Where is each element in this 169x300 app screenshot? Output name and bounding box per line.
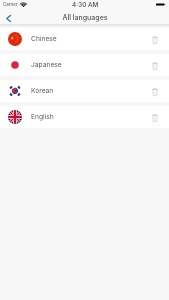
- staticText: Chinese: [31, 35, 57, 43]
- staticText: Japanese: [31, 61, 62, 69]
- button[interactable]: Delete Chinese: [148, 33, 161, 46]
- button[interactable]: Delete Japanese: [148, 59, 161, 72]
- button[interactable]: Delete English: [148, 111, 161, 124]
- staticText: English: [31, 113, 54, 121]
- button[interactable]: Delete Korean: [148, 85, 161, 98]
- staticText: All languages: [62, 13, 108, 21]
- staticText: Korean: [31, 87, 54, 95]
- staticText: 4:30 AM: [72, 1, 99, 9]
- button[interactable]: Back: [0, 10, 16, 25]
- button[interactable]: Korean: [0, 80, 169, 102]
- staticText: Carrier: [3, 2, 18, 7]
- button[interactable]: Japanese: [0, 54, 169, 76]
- button[interactable]: English: [0, 106, 169, 128]
- button[interactable]: Chinese: [0, 28, 169, 50]
